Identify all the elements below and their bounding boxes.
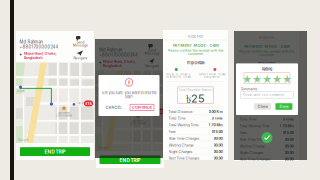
staticText: ! <box>128 80 130 87</box>
staticText: Google <box>98 146 109 150</box>
staticText: Total Payable Amount <box>178 88 212 92</box>
staticText: Mirpur Road, Dhaka, <box>103 59 136 64</box>
staticText: Night Charges <box>169 150 193 154</box>
staticText: Trip Detail <box>186 61 204 65</box>
staticText: Bangladesh <box>24 55 43 60</box>
staticText: END TRIP <box>119 157 140 163</box>
staticText: Done <box>279 104 288 109</box>
staticText: Ride Time Charges <box>240 137 271 142</box>
staticText: Send <box>148 49 156 52</box>
staticText: 00.00 <box>285 137 294 142</box>
button[interactable]: Close <box>254 103 271 110</box>
staticText: Bangladesh <box>103 63 122 68</box>
staticText: Bangladesh <box>204 75 220 78</box>
staticText: Ride Fee <box>188 34 203 39</box>
staticText: Waiting Charge <box>169 143 194 147</box>
staticText: 00.00 <box>285 151 294 155</box>
staticText: Ride Time Charges <box>169 136 200 141</box>
staticText: 00.00 <box>214 150 223 154</box>
staticText: Dhanmondi, Dhaka <box>165 75 190 78</box>
staticText: 0 Time <box>283 117 294 121</box>
staticText: Night Charges <box>240 151 264 155</box>
staticText: Total Time <box>169 116 186 120</box>
staticText: Curzon Market <box>56 114 72 117</box>
staticText: Google <box>18 138 29 142</box>
staticText: customer <box>259 53 274 57</box>
staticText: 015.00 <box>212 129 223 134</box>
staticText: Close <box>258 104 268 109</box>
staticText: Rating <box>262 67 272 71</box>
staticText: +8801700000244 <box>19 44 58 49</box>
staticText: 015.00 <box>283 130 294 135</box>
staticText: Please write your comments <box>243 93 284 97</box>
staticText: Navigate <box>74 56 88 60</box>
staticText: Please confirm the receipt with the <box>238 49 294 53</box>
staticText: 1.70 Min <box>209 123 223 127</box>
staticText: Please confirm the receipt with the <box>167 48 223 52</box>
staticText: CANCEL <box>105 105 121 110</box>
staticText: +8801700000244 <box>99 52 138 57</box>
staticText: 00.00 <box>214 143 223 147</box>
staticText: Total Payable Amount <box>249 89 283 93</box>
staticText: Fare <box>240 130 247 135</box>
staticText: Message <box>145 52 160 55</box>
staticText: Comments: <box>241 87 259 91</box>
staticText: PAYMENT MODE - Cash <box>243 44 289 49</box>
staticText: Waiting Charge <box>240 144 265 148</box>
button[interactable]: Send Message <box>73 35 88 47</box>
staticText: Send <box>77 41 85 44</box>
staticText: ★★★★★ <box>242 73 292 85</box>
staticText: Navigate <box>145 64 159 68</box>
staticText: 00.00 <box>214 156 223 160</box>
staticText: ৳25 <box>186 92 205 107</box>
staticText: Suburb <box>76 102 85 105</box>
button[interactable]: CANCEL <box>103 104 123 111</box>
staticText: Curzon Market <box>130 122 146 125</box>
button[interactable]: Navigate <box>73 49 88 60</box>
staticText: Mirpur Road, Dhaka <box>199 73 225 76</box>
staticText: Md Rahman <box>99 47 122 52</box>
staticText: 0 Time <box>212 116 223 120</box>
staticText: ETA <box>156 110 162 114</box>
staticText: ৳25 <box>257 93 276 108</box>
staticText: Fare <box>169 129 176 134</box>
staticText: Mirpur Road, Dhaka <box>270 74 296 77</box>
staticText: 1.70 Min <box>280 124 294 128</box>
staticText: ETA <box>85 102 91 106</box>
staticText: PAYMENT MODE - Cash <box>172 43 218 48</box>
staticText: 00.00 <box>214 136 223 141</box>
staticText: ride? <box>125 95 133 99</box>
button[interactable]: CONTINUE <box>130 104 154 111</box>
staticText: Total Distance <box>169 109 193 114</box>
button[interactable]: Done <box>275 103 292 110</box>
staticText: Total Waiting Time <box>169 123 199 127</box>
staticText: Trip Detail <box>257 62 275 66</box>
staticText: Mirpur Road, Dhaka, <box>24 51 57 56</box>
staticText: Udyan <box>17 89 24 92</box>
staticText: 00.00 <box>285 144 294 148</box>
staticText: Md Rahman <box>19 39 42 44</box>
staticText: Message <box>73 44 88 47</box>
staticText: Are you sure, you want to end the <box>101 91 156 95</box>
staticText: Rest Time Charges <box>240 157 271 161</box>
staticText: Suburb <box>148 110 157 113</box>
staticText: Jute Market <box>58 111 70 114</box>
staticText: END TRIP <box>44 149 65 154</box>
staticText: Dhanmondi, Dhaka <box>236 76 261 79</box>
staticText: Rest Time Charges <box>169 156 200 160</box>
staticText: Ride Fee <box>259 35 274 40</box>
staticText: 0.00 Km <box>209 109 223 114</box>
staticText: END TRIP <box>44 149 65 155</box>
staticText: Total Waiting Time <box>240 124 270 128</box>
staticText: Udyan <box>97 97 104 100</box>
staticText: 00.00 <box>285 157 294 161</box>
staticText: Jute Market <box>132 119 144 122</box>
staticText: Total Time <box>240 117 257 121</box>
staticText: Bangladesh <box>275 76 291 79</box>
button[interactable]: END TRIP <box>20 147 90 156</box>
staticText: House 12, Road 3 <box>236 74 261 77</box>
staticText: House 12, Road 3 <box>165 73 190 76</box>
staticText: CONTINUE <box>132 105 152 110</box>
